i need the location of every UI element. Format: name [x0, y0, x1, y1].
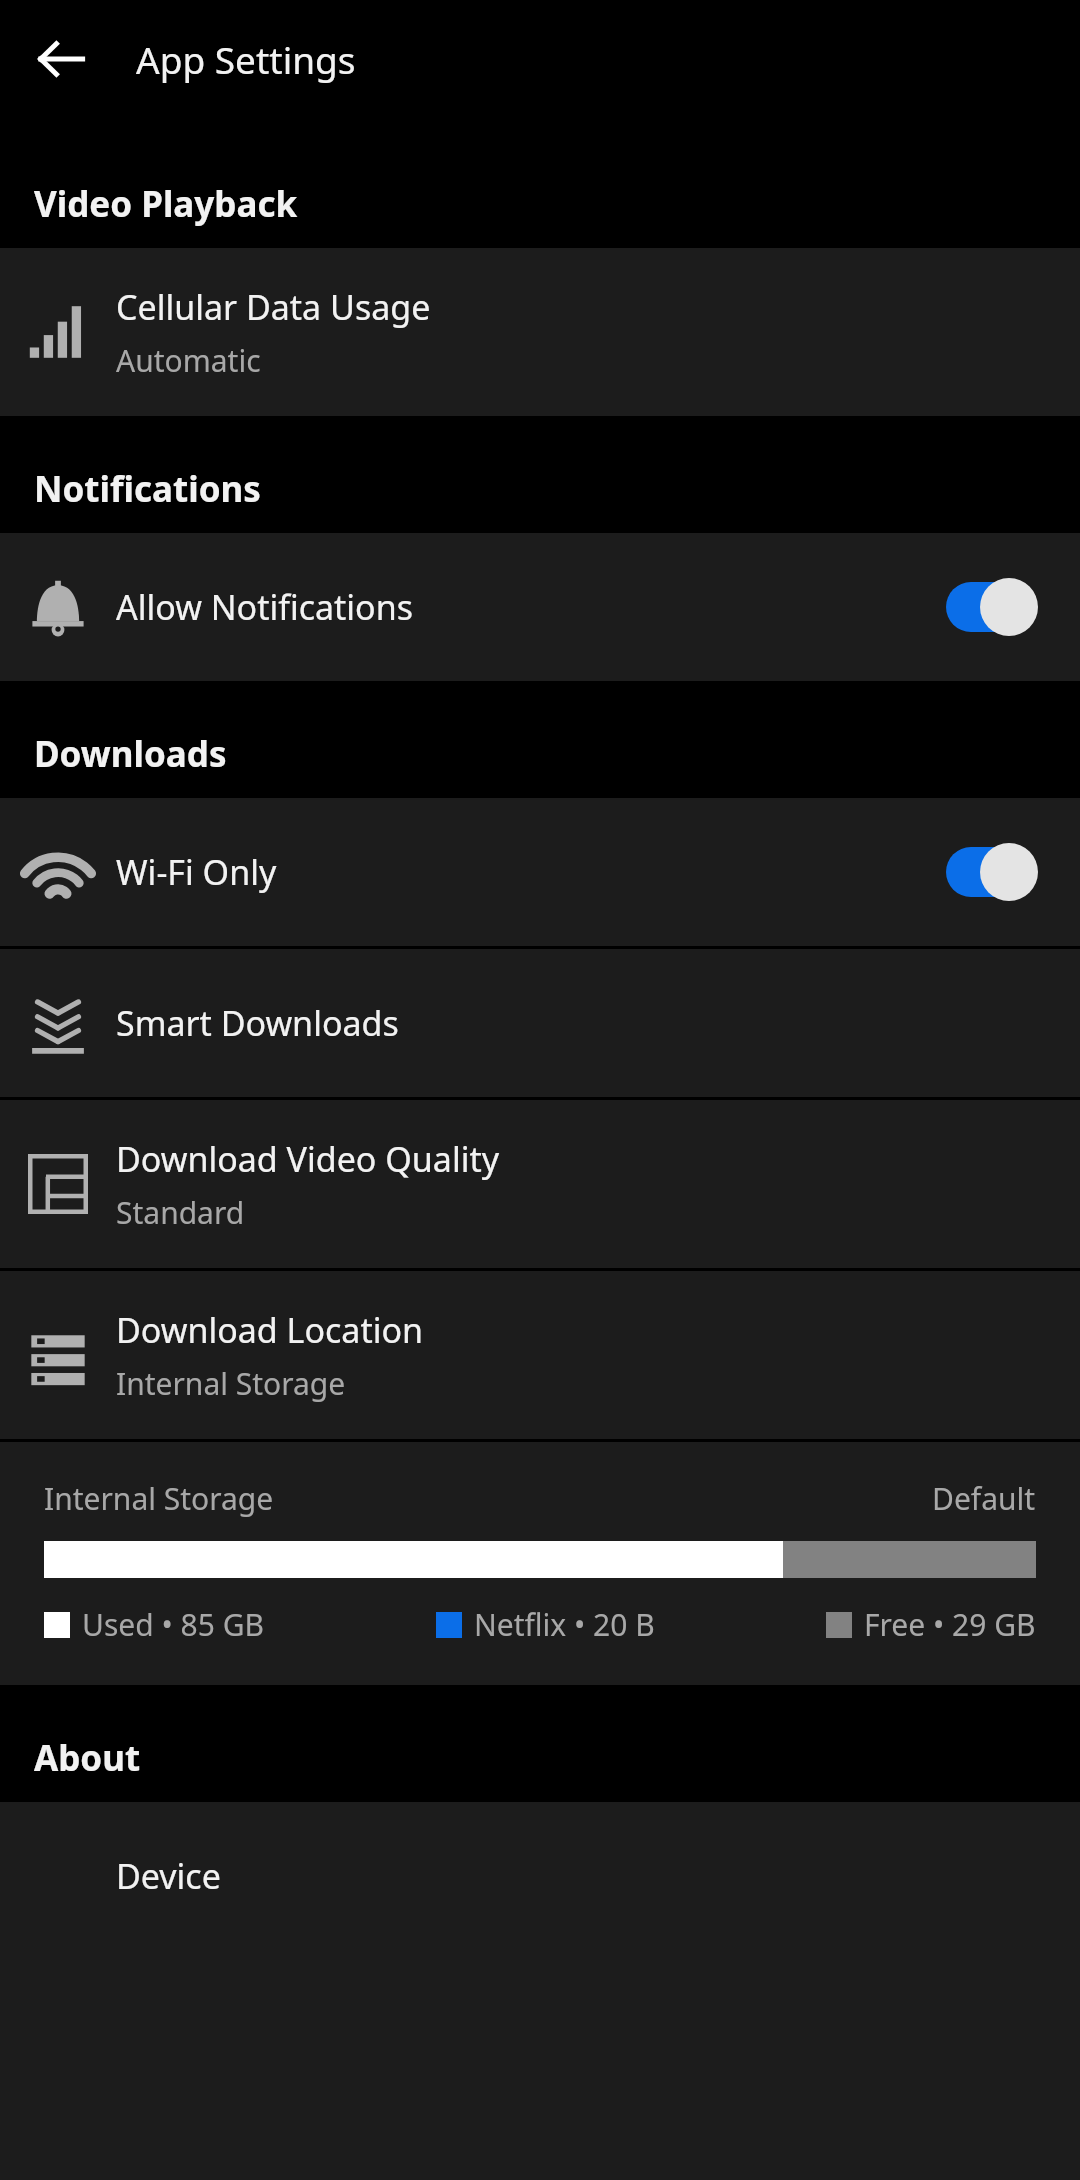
staticText: Device: [116, 1853, 221, 1899]
button[interactable]: Download Location: [0, 1271, 1080, 1439]
staticText: App Settings: [136, 34, 356, 84]
staticText: Netflix • 20 B: [474, 1604, 655, 1645]
staticText: Automatic: [116, 340, 261, 381]
button[interactable]: Allow Notifications: [0, 533, 1080, 681]
button[interactable]: Download Video Quality: [0, 1100, 1080, 1268]
staticText: Download Location: [116, 1307, 424, 1353]
button[interactable]: Back: [22, 20, 100, 98]
staticText: About: [34, 1734, 141, 1782]
button[interactable]: Cellular Data Usage: [0, 248, 1080, 416]
staticText: Used • 85 GB: [82, 1604, 265, 1645]
staticText: Download Video Quality: [116, 1136, 500, 1182]
staticText: Smart Downloads: [116, 1000, 399, 1046]
staticText: Standard: [116, 1192, 245, 1233]
button[interactable]: Toggle: [946, 843, 1038, 901]
staticText: Default: [932, 1478, 1036, 1519]
button[interactable]: Smart Downloads: [0, 949, 1080, 1097]
staticText: Allow Notifications: [116, 584, 413, 630]
button[interactable]: Toggle: [946, 578, 1038, 636]
staticText: Free • 29 GB: [864, 1604, 1036, 1645]
staticText: Notifications: [34, 465, 261, 513]
button[interactable]: Wi-Fi Only: [0, 798, 1080, 946]
staticText: Internal Storage: [116, 1363, 346, 1404]
staticText: Downloads: [34, 730, 227, 778]
staticText: Internal Storage: [44, 1478, 274, 1519]
staticText: Wi-Fi Only: [116, 849, 277, 895]
staticText: Video Playback: [34, 180, 298, 228]
button[interactable]: Device: [0, 1802, 1080, 1950]
staticText: Cellular Data Usage: [116, 284, 431, 330]
